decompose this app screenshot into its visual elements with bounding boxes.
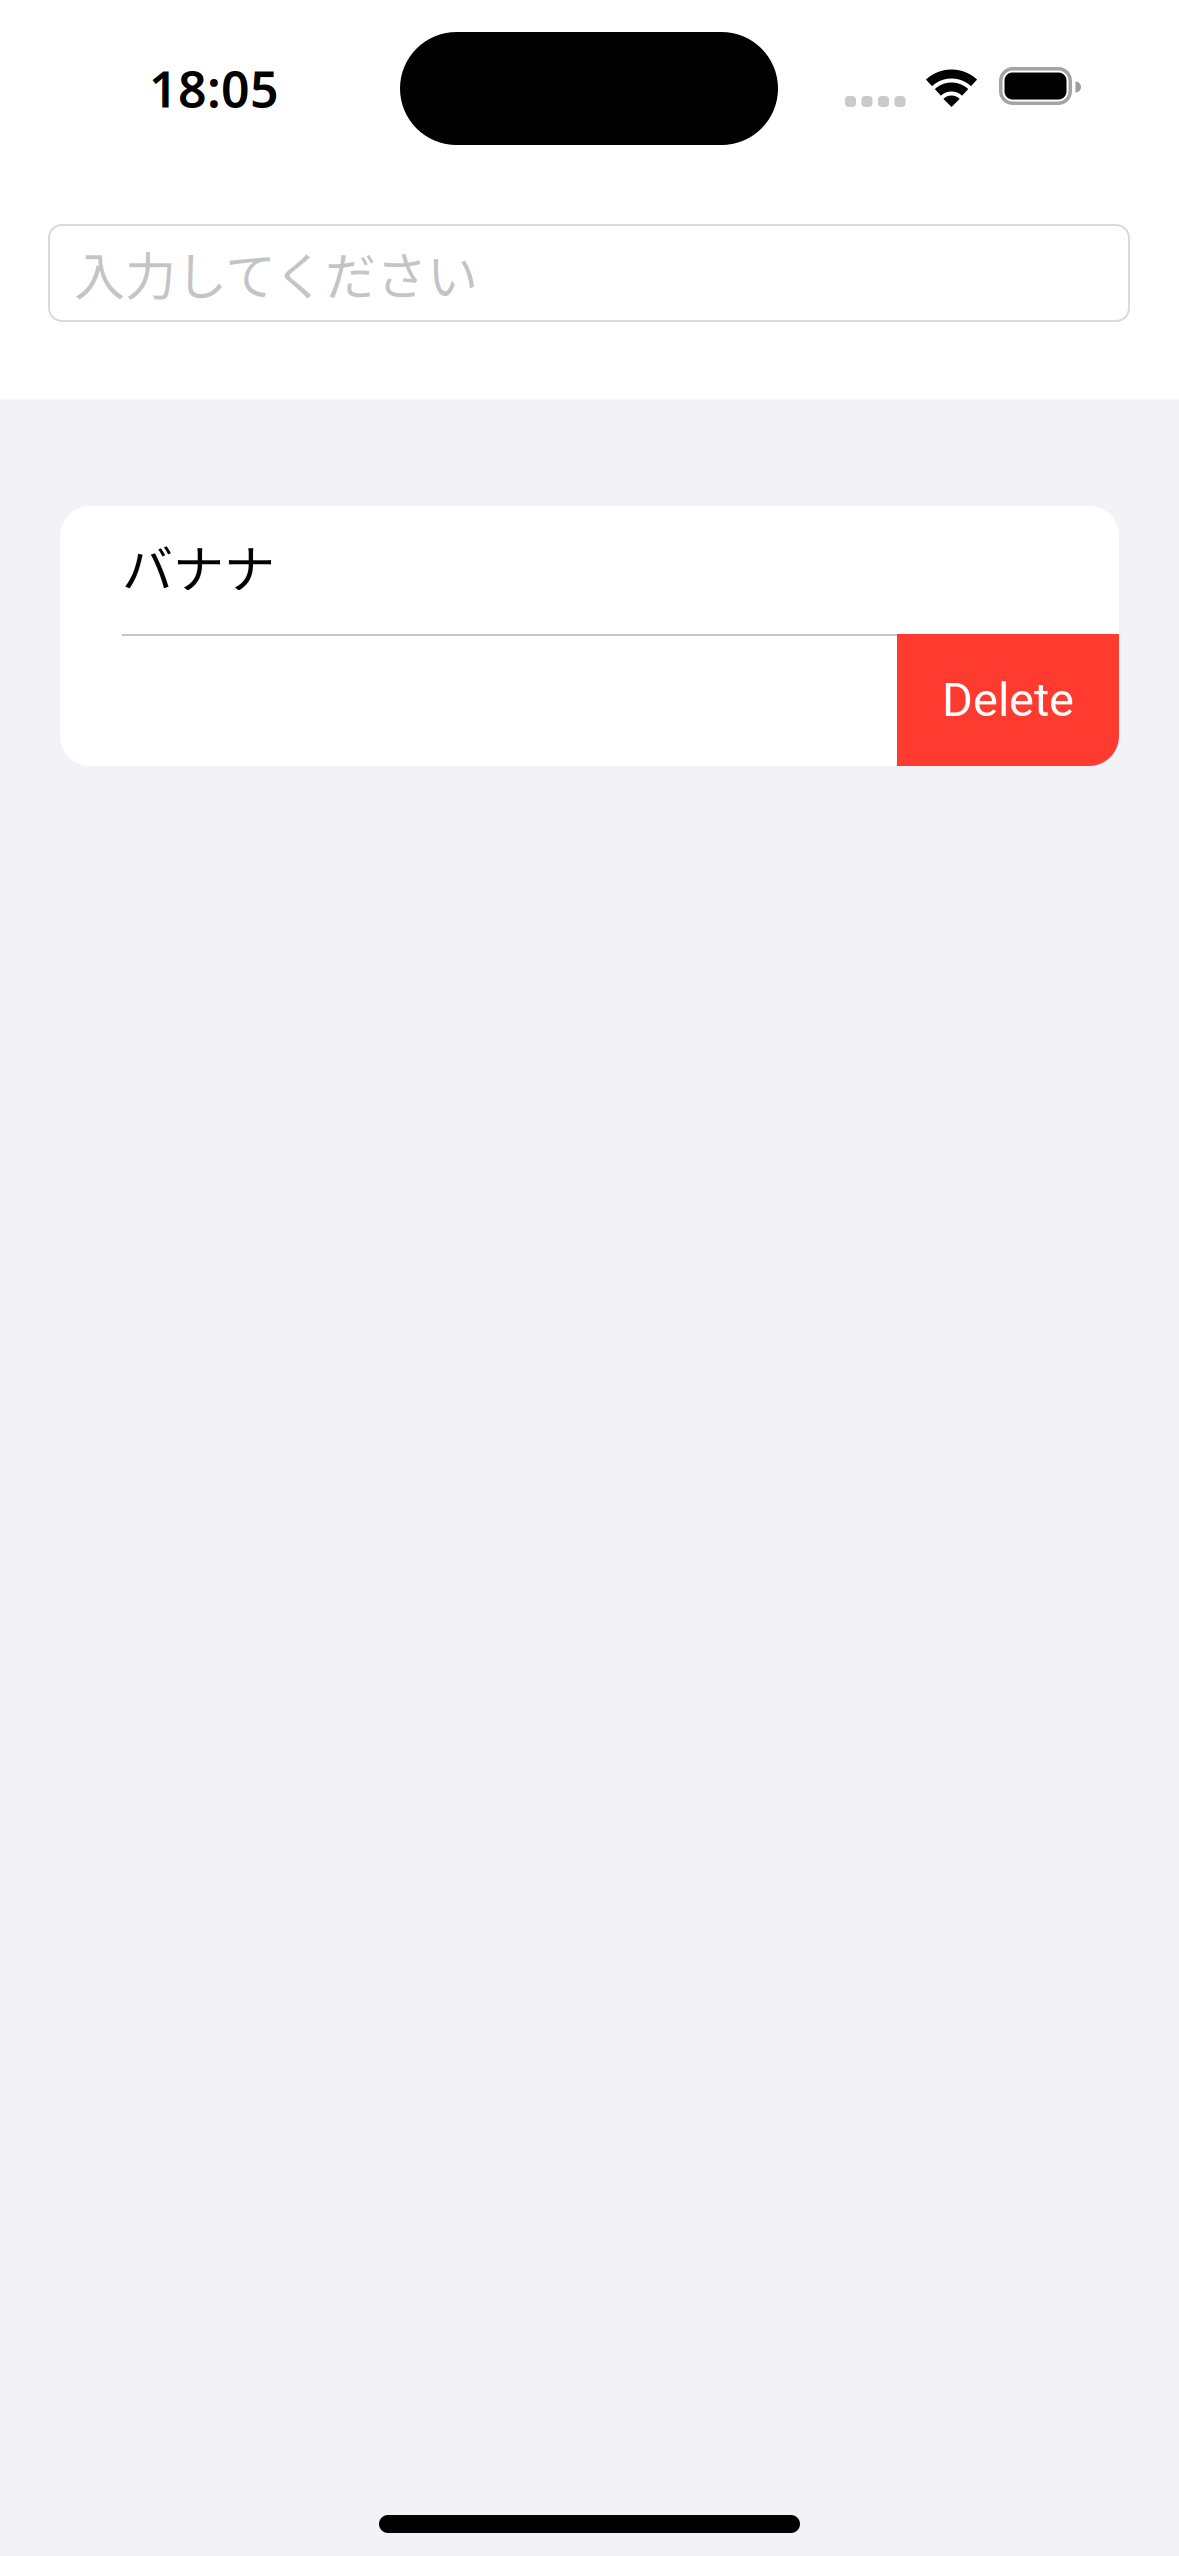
button[interactable]: バナナ xyxy=(60,506,1119,634)
staticText: 入力してください xyxy=(74,236,478,310)
textField[interactable]: 入力してください xyxy=(48,224,1130,322)
staticText: Delete xyxy=(942,672,1074,728)
staticText: 18:05 xyxy=(149,54,279,122)
button[interactable]: Delete xyxy=(897,634,1119,766)
staticText: バナナ xyxy=(122,529,275,603)
